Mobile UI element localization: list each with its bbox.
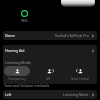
staticText: Off (46, 77, 51, 81)
button[interactable]: Left (3, 90, 97, 99)
button[interactable]: Transparency (3, 66, 33, 82)
staticText: Name (5, 33, 15, 38)
staticText: Listening Mode (5, 60, 32, 65)
staticText: 96% (21, 18, 28, 23)
staticText: Transparency (8, 77, 26, 81)
button[interactable]: Name (3, 31, 97, 40)
staticText: Listening Mode (63, 92, 89, 97)
staticText: Tone and Volume methods (4, 83, 50, 88)
button[interactable]: Hearing Aid (3, 45, 97, 56)
button[interactable]: Off (33, 66, 64, 82)
staticText: Kashaf's AirPods Pro (55, 33, 89, 38)
staticText: Noise Control (71, 77, 89, 81)
staticText: Left (5, 92, 12, 97)
staticText: Hearing Aid (5, 48, 25, 53)
button[interactable]: Noise Control (64, 66, 95, 82)
